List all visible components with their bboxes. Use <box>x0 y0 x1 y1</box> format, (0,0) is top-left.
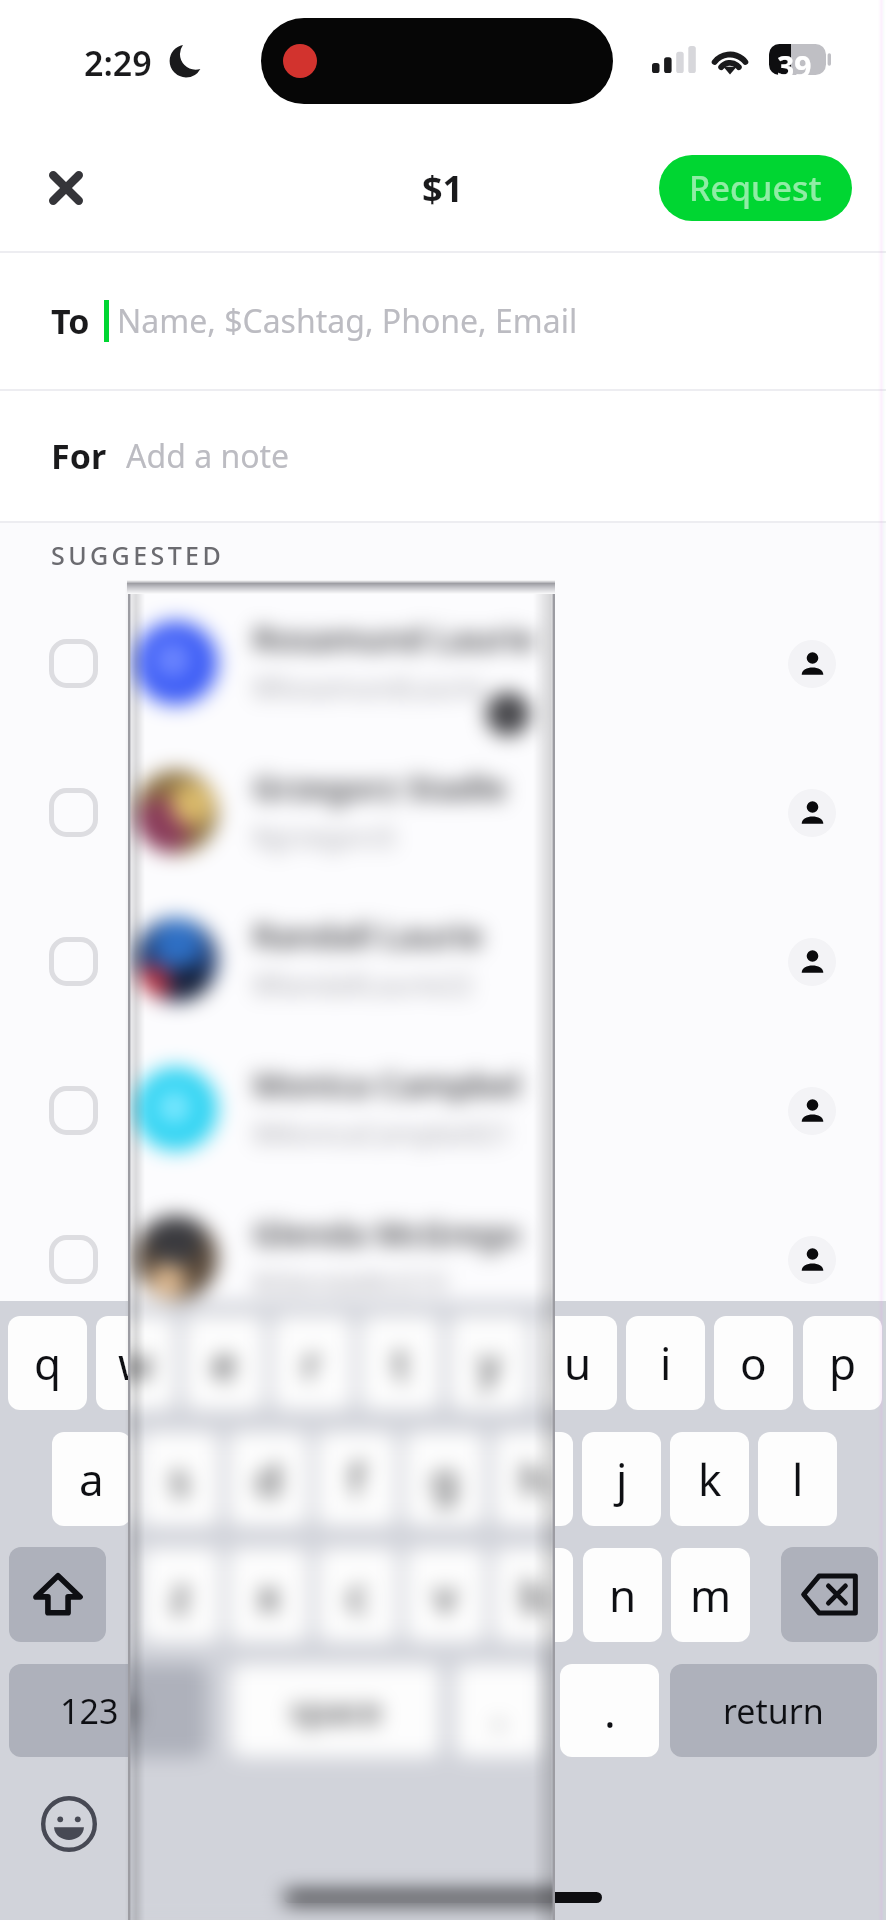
staticText: k <box>698 1449 722 1509</box>
button[interactable]: y <box>450 1316 529 1410</box>
button[interactable]: Add contact <box>0 589 886 738</box>
button[interactable]: Add contact <box>0 738 886 887</box>
staticText: 123 <box>79 1688 138 1734</box>
button[interactable]: Add contact <box>788 938 836 986</box>
button[interactable]: . <box>560 1664 659 1757</box>
staticText: p <box>829 1333 857 1393</box>
button[interactable]: p <box>803 1316 882 1410</box>
button[interactable]: b <box>494 1548 573 1642</box>
button[interactable]: t <box>361 1316 440 1410</box>
button[interactable]: 123 <box>9 1664 169 1757</box>
button[interactable]: Add contact <box>0 1036 886 1185</box>
button[interactable]: k <box>670 1432 749 1526</box>
button[interactable]: Close <box>25 147 107 229</box>
button[interactable]: a <box>52 1432 131 1526</box>
button[interactable]: d <box>229 1432 308 1526</box>
staticText: m <box>690 1565 732 1625</box>
button[interactable]: Add contact <box>0 1185 886 1334</box>
button[interactable]: m <box>671 1548 750 1642</box>
button[interactable]: w <box>96 1316 175 1410</box>
button[interactable]: h <box>494 1432 573 1526</box>
button[interactable]: h <box>494 1432 573 1526</box>
staticText: d <box>255 1449 283 1509</box>
staticText: e <box>212 1333 237 1393</box>
staticText: k <box>698 1449 722 1509</box>
button[interactable]: Shift <box>9 1547 106 1642</box>
button[interactable]: r <box>273 1316 352 1410</box>
button[interactable]: x <box>229 1548 308 1642</box>
staticText: o <box>740 1333 767 1393</box>
button[interactable]: return <box>670 1664 877 1757</box>
staticText: Name, $Cashtag, Phone, Email <box>117 299 578 343</box>
staticText: o <box>740 1333 767 1393</box>
button[interactable]: Shift <box>9 1547 106 1642</box>
button[interactable]: e <box>185 1316 264 1410</box>
button[interactable]: y <box>450 1316 529 1410</box>
staticText: w <box>118 1333 153 1393</box>
button[interactable]: g <box>405 1432 484 1526</box>
button[interactable]: q <box>8 1316 87 1410</box>
button[interactable]: n <box>583 1548 662 1642</box>
button[interactable]: m <box>671 1548 750 1642</box>
button[interactable]: k <box>670 1432 749 1526</box>
button[interactable]: 123 <box>9 1664 207 1757</box>
button[interactable]: i <box>626 1316 705 1410</box>
button[interactable]: o <box>714 1316 793 1410</box>
button[interactable]: n <box>583 1548 662 1642</box>
button[interactable]: . <box>455 1664 543 1757</box>
button[interactable]: c <box>318 1548 397 1642</box>
button[interactable]: z <box>141 1548 220 1642</box>
button[interactable]: e <box>185 1316 264 1410</box>
button[interactable]: v <box>406 1548 485 1642</box>
button[interactable]: s <box>140 1432 219 1526</box>
button[interactable]: s <box>140 1432 219 1526</box>
button[interactable]: Request <box>659 155 852 221</box>
button[interactable]: Add contact <box>788 1087 836 1135</box>
button[interactable]: u <box>538 1316 617 1410</box>
button[interactable]: l <box>758 1432 837 1526</box>
button[interactable]: return <box>670 1664 877 1757</box>
button[interactable]: x <box>229 1548 308 1642</box>
button[interactable]: Emoji keyboard <box>28 1783 110 1865</box>
button[interactable]: q <box>8 1316 87 1410</box>
staticText: i <box>660 1333 672 1393</box>
button[interactable]: f <box>317 1432 396 1526</box>
button[interactable]: t <box>361 1316 440 1410</box>
button[interactable]: l <box>758 1432 837 1526</box>
button[interactable]: i <box>626 1316 705 1410</box>
button[interactable]: g <box>405 1432 484 1526</box>
button[interactable]: To <box>0 253 886 389</box>
button[interactable]: c <box>318 1548 397 1642</box>
button[interactable]: space <box>177 1664 552 1757</box>
button[interactable]: j <box>582 1432 661 1526</box>
button[interactable]: Emoji keyboard <box>28 1783 110 1865</box>
button[interactable]: f <box>317 1432 396 1526</box>
button[interactable]: z <box>141 1548 220 1642</box>
button[interactable]: o <box>714 1316 793 1410</box>
button[interactable]: d <box>229 1432 308 1526</box>
button[interactable]: w <box>96 1316 175 1410</box>
button[interactable]: j <box>582 1432 661 1526</box>
staticText: w <box>118 1333 153 1393</box>
button[interactable]: space <box>231 1664 440 1757</box>
button[interactable]: Backspace <box>781 1547 878 1642</box>
button[interactable]: u <box>538 1316 617 1410</box>
button[interactable]: b <box>494 1548 573 1642</box>
button[interactable]: Add contact <box>0 887 886 1036</box>
button[interactable]: Add contact <box>788 1236 836 1284</box>
button[interactable]: r <box>273 1316 352 1410</box>
button[interactable]: For <box>0 391 886 521</box>
staticText: return <box>723 1688 824 1734</box>
button[interactable]: Add contact <box>788 789 836 837</box>
button[interactable]: a <box>52 1432 131 1526</box>
staticText: t <box>393 1333 409 1393</box>
button[interactable]: Add contact <box>788 640 836 688</box>
button[interactable]: v <box>406 1548 485 1642</box>
staticText: Rosamund Laurie <box>253 616 535 661</box>
button[interactable]: Backspace <box>781 1547 878 1642</box>
staticText: c <box>347 1565 369 1625</box>
staticText: space <box>290 1688 382 1734</box>
button[interactable]: p <box>803 1316 882 1410</box>
staticText: 39 <box>777 46 812 87</box>
staticText: e <box>212 1333 237 1393</box>
